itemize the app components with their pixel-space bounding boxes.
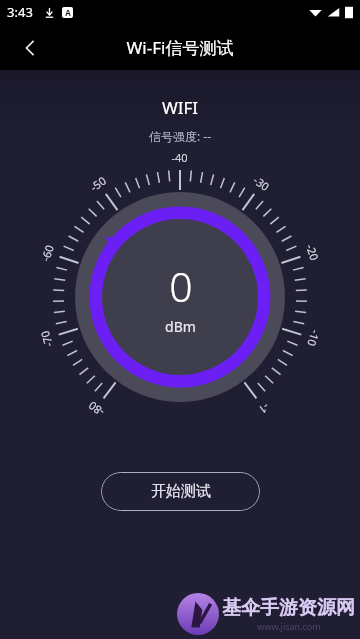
staticText: Wi-Fi信号测试 <box>0 36 360 59</box>
staticText: 开始测试 <box>151 482 211 501</box>
staticText: 信号强度: -- <box>0 128 360 144</box>
staticText: WIFI <box>0 96 360 119</box>
staticText: dBm <box>165 317 196 336</box>
staticText: 基伞手游资源网 <box>222 596 355 620</box>
button[interactable]: Back <box>13 31 46 64</box>
staticText: A <box>65 7 71 18</box>
staticText: 0 <box>169 258 193 314</box>
button[interactable]: 开始测试 <box>101 472 260 511</box>
staticText: www.jisan.com <box>257 620 321 632</box>
staticText: 3:43 <box>7 3 33 21</box>
